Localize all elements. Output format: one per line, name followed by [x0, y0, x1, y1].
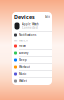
staticText: Heart	[19, 44, 26, 48]
button[interactable]: Notifications	[12, 32, 52, 38]
staticText: Workout	[19, 65, 30, 69]
button[interactable]: Music	[12, 71, 52, 77]
button[interactable]: Sleep	[12, 57, 52, 63]
button[interactable]: Activity	[12, 50, 52, 56]
button[interactable]: Edit	[45, 15, 50, 19]
staticText: Activity	[19, 51, 28, 55]
button[interactable]: Workout	[12, 64, 52, 70]
staticText: Sleep	[19, 58, 27, 62]
staticText: Apple Watch	[22, 22, 39, 26]
staticText: Edit	[45, 15, 50, 19]
staticText: Music	[19, 72, 26, 76]
button[interactable]: Heart	[12, 43, 52, 49]
staticText: Connected	[22, 26, 38, 29]
button[interactable]: Apple Watch	[12, 21, 52, 31]
staticText: MY WATCH	[14, 39, 28, 42]
staticText: Wallet	[19, 79, 27, 83]
staticText: Devices	[14, 13, 35, 21]
button[interactable]: Wallet	[12, 78, 52, 84]
staticText: Notifications	[19, 33, 36, 37]
